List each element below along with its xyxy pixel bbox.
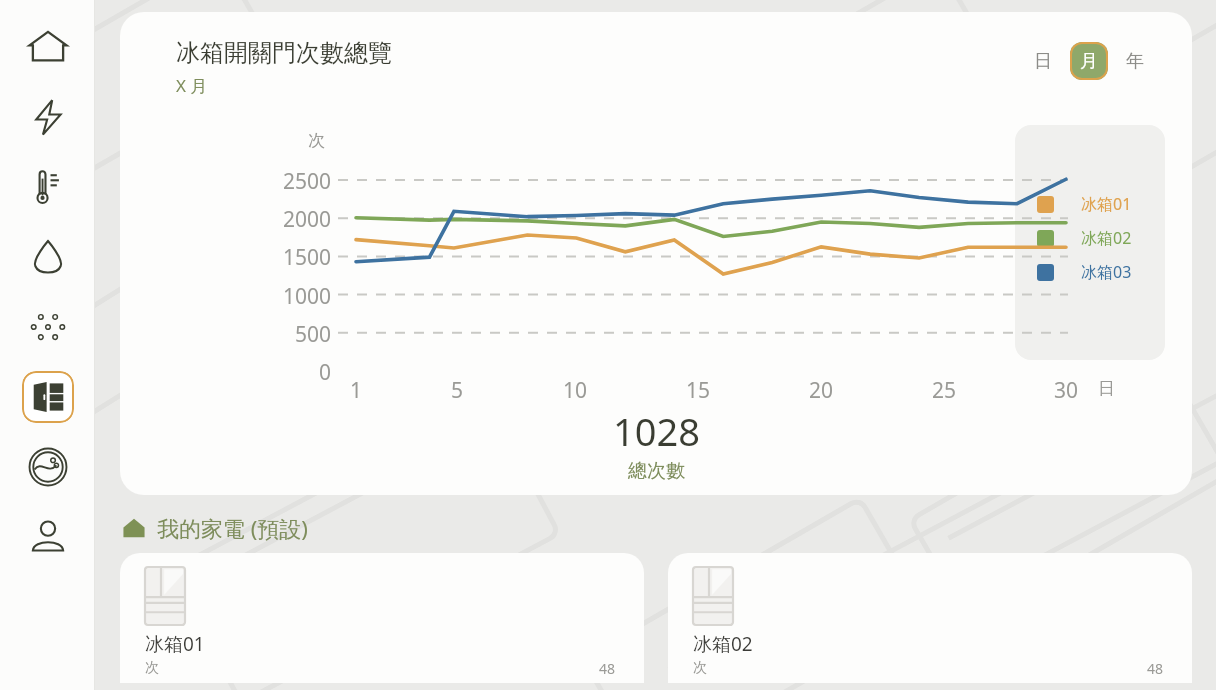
staticText: 500 [295,320,332,349]
staticText: X 月 [176,74,208,97]
staticText: 冰箱01 [1081,193,1132,215]
button[interactable]: 冰箱01 [120,553,644,683]
staticText: 冰箱開關門次數總覽 [176,38,392,68]
staticText: 冰箱02 [1081,227,1132,249]
staticText: 冰箱02 [693,631,753,657]
button[interactable]: 冰箱01 [1037,193,1132,215]
staticText: 次 [693,659,707,677]
staticText: 1 [350,376,363,405]
staticText: 次 [308,130,325,151]
staticText: 0 [319,358,332,387]
staticText: 日 [1034,50,1052,73]
button[interactable]: Humidity [13,222,83,292]
button[interactable]: Temperature [13,152,83,222]
button[interactable]: 冰箱02 [668,553,1192,683]
staticText: 總次數 [628,459,685,483]
staticText: 30 [1054,376,1079,405]
button[interactable]: 年 [1116,42,1154,80]
button[interactable]: Laundry [13,432,83,502]
staticText: 冰箱03 [1081,261,1132,283]
button[interactable]: Refrigerator [13,362,83,432]
staticText: 1028 [613,405,700,457]
staticText: 日 [1098,378,1115,399]
staticText: 我的家電 (預設) [157,513,308,543]
button[interactable]: 我的家電 (預設) [123,513,308,543]
button[interactable]: Air quality [13,292,83,362]
staticText: 48 [1147,659,1164,678]
staticText: 20 [809,376,834,405]
button[interactable]: Home [13,12,83,82]
button[interactable]: Energy [13,82,83,152]
staticText: 次 [145,659,159,677]
button[interactable]: Profile [13,502,83,572]
button[interactable]: 冰箱03 [1037,261,1132,283]
button[interactable]: 月 [1070,42,1108,80]
staticText: 5 [451,376,464,405]
staticText: 2500 [283,167,332,196]
staticText: 月 [1080,50,1098,73]
staticText: 2000 [283,205,332,234]
staticText: 1500 [283,243,332,272]
staticText: 15 [686,376,711,405]
staticText: 25 [932,376,957,405]
button[interactable]: 冰箱02 [1037,227,1132,249]
staticText: 48 [599,659,616,678]
staticText: 年 [1126,50,1144,73]
button[interactable]: 日 [1024,42,1062,80]
staticText: 1000 [283,282,332,311]
staticText: 冰箱01 [145,631,205,657]
staticText: 10 [563,376,588,405]
